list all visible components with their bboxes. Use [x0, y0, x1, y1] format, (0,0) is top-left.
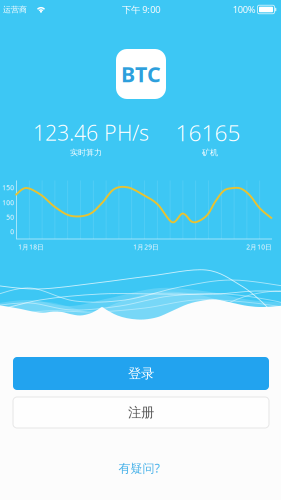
staticText: 150	[2, 183, 14, 192]
staticText: 100%	[232, 3, 255, 16]
staticText: 1月29日	[133, 243, 159, 251]
staticText: 有疑问?	[118, 460, 159, 476]
staticText: 100	[2, 198, 14, 207]
staticText: 50	[6, 213, 14, 222]
button[interactable]: 注册	[13, 397, 269, 428]
staticText: 下午 9:00	[122, 3, 160, 16]
button[interactable]: 有疑问?	[94, 457, 184, 479]
staticText: 2月10日	[246, 243, 272, 251]
staticText: 16165	[175, 117, 240, 147]
staticText: BTC	[121, 60, 161, 88]
staticText: 1月18日	[18, 243, 44, 251]
staticText: 0	[10, 227, 14, 236]
button[interactable]: 登录	[13, 357, 269, 390]
staticText: 登录	[128, 365, 154, 382]
staticText: 123.46 PH/s	[33, 118, 149, 147]
staticText: 矿机	[202, 148, 218, 157]
staticText: 实时算力	[70, 148, 102, 157]
staticText: 注册	[128, 404, 154, 421]
staticText: 运营商	[3, 5, 27, 14]
